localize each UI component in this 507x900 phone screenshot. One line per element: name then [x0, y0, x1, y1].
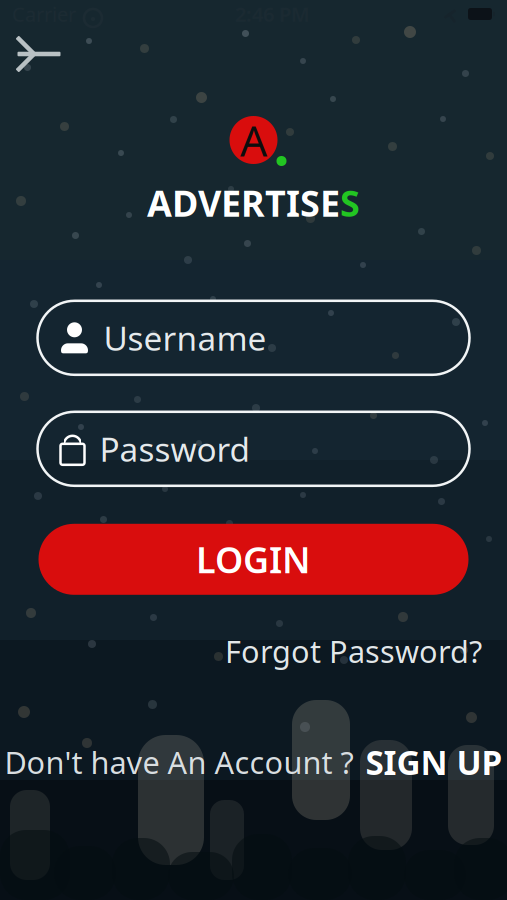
staticText: LOGIN	[196, 535, 311, 583]
staticText: ADVERTISE	[147, 179, 340, 227]
button[interactable]: Forgot Password?	[225, 625, 482, 677]
button[interactable]: LOGIN	[38, 524, 468, 595]
staticText: A	[240, 112, 267, 168]
button[interactable]: Username	[37, 301, 469, 375]
button[interactable]: Back	[8, 28, 70, 80]
staticText: S	[340, 179, 360, 227]
staticText: Don't have An Account ?	[4, 742, 353, 782]
staticText: SIGN UP	[365, 740, 502, 784]
staticText: Password	[99, 427, 250, 471]
button[interactable]: Password	[37, 412, 469, 486]
staticText: Forgot Password?	[225, 631, 482, 671]
button[interactable]: SIGN UP	[365, 736, 502, 788]
staticText: Username	[103, 316, 266, 360]
